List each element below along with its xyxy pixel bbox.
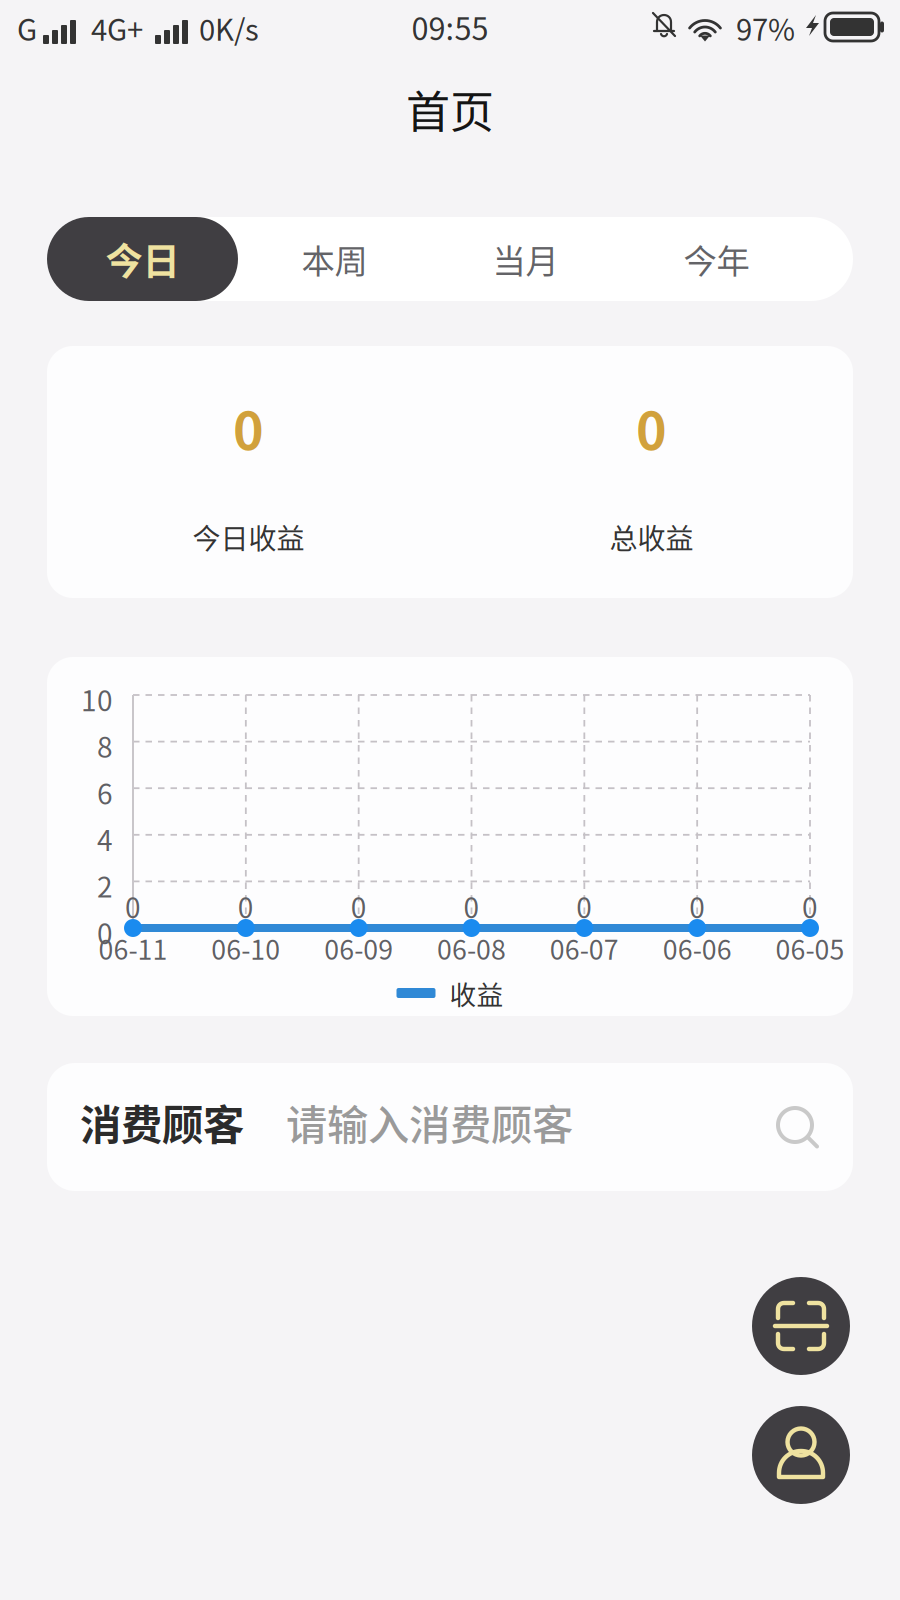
button[interactable]: 今日	[47, 217, 238, 301]
staticText: 消费顾客	[80, 1092, 244, 1152]
staticText: 0	[802, 886, 818, 926]
staticText: 0	[125, 886, 141, 926]
staticText: 10	[81, 679, 113, 719]
staticText: 06-11	[98, 929, 167, 967]
staticText: 0	[576, 886, 592, 926]
button[interactable]: 扫一扫	[752, 1277, 850, 1375]
staticText: 97%	[736, 7, 795, 49]
staticText: G	[17, 7, 37, 49]
staticText: 06-10	[211, 929, 280, 967]
staticText: 今年	[683, 235, 749, 283]
staticText: 今日	[105, 232, 179, 286]
staticText: 0	[463, 886, 479, 926]
staticText: 0	[97, 912, 113, 952]
staticText: 0	[636, 389, 667, 465]
staticText: 0	[233, 389, 264, 465]
staticText: 06-08	[437, 929, 506, 967]
staticText: 06-09	[324, 929, 393, 967]
staticText: 8	[97, 725, 113, 766]
staticText: 0K/s	[199, 7, 259, 49]
staticText: 2	[97, 865, 113, 906]
staticText: 0	[689, 886, 705, 926]
staticText: 4G+	[91, 7, 143, 49]
button[interactable]: 本周	[239, 217, 430, 301]
staticText: 6	[97, 772, 113, 812]
staticText: 06-05	[775, 929, 844, 967]
staticText: 09:55	[411, 5, 488, 49]
staticText: 当月	[492, 235, 558, 283]
staticText: 0	[238, 886, 254, 926]
button[interactable]: 消费顾客	[47, 1063, 853, 1191]
staticText: 0	[351, 886, 367, 926]
button[interactable]: 今年	[621, 217, 812, 301]
staticText: 本周	[301, 235, 367, 283]
button[interactable]: 当月	[430, 217, 621, 301]
staticText: 收益	[449, 974, 503, 1012]
staticText: 首页	[406, 77, 494, 141]
staticText: 今日收益	[192, 517, 304, 557]
staticText: 06-06	[663, 929, 732, 967]
button[interactable]: 会员	[752, 1406, 850, 1504]
staticText: 06-07	[550, 929, 619, 967]
staticText: 总收益	[609, 517, 693, 557]
staticText: 4	[97, 818, 113, 859]
staticText: 请输入消费顾客	[286, 1092, 573, 1152]
